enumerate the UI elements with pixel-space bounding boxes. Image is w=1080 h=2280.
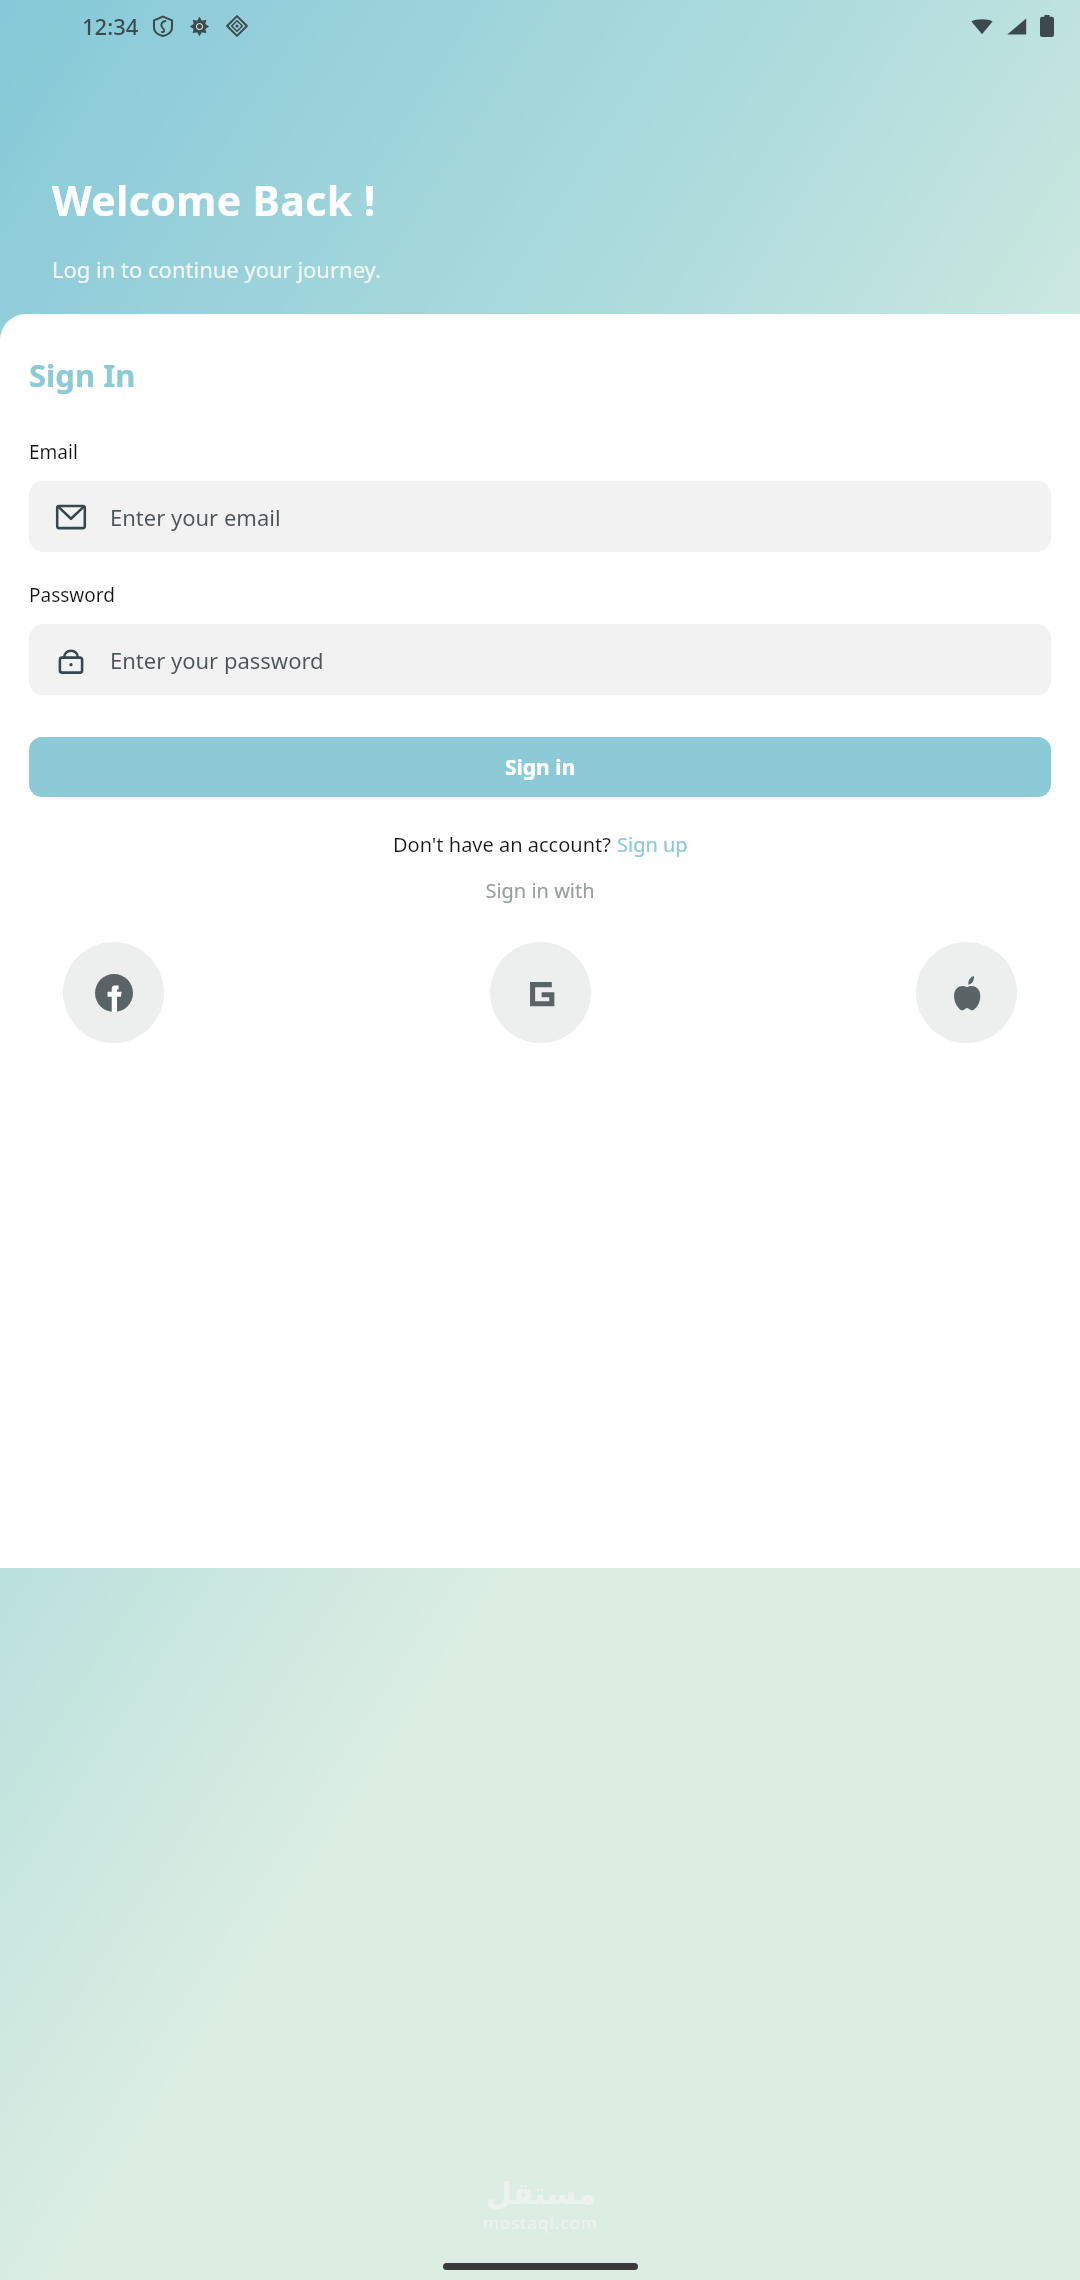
staticText: Welcome Back ! — [52, 172, 376, 228]
staticText: Sign up — [617, 831, 688, 858]
staticText: مستقل — [486, 2176, 596, 2211]
staticText: Sign in — [505, 753, 576, 782]
button[interactable]: Enter your password — [29, 624, 1051, 695]
button[interactable]: Sign up — [617, 831, 688, 858]
button[interactable]: Sign in with Facebook — [63, 942, 164, 1043]
staticText: Password — [29, 582, 115, 608]
staticText: Don't have an account? — [393, 831, 617, 858]
staticText: Email — [29, 439, 78, 465]
staticText: Enter your password — [110, 645, 324, 675]
staticText: Sign in with — [29, 877, 1051, 904]
staticText: Log in to continue your journey. — [52, 254, 381, 284]
button[interactable]: Enter your email — [29, 481, 1051, 552]
staticText: mostaql.com — [483, 2211, 598, 2234]
button[interactable]: Sign in — [29, 737, 1051, 797]
staticText: 12:34 — [82, 11, 139, 41]
staticText: Sign In — [29, 354, 136, 396]
staticText: Enter your email — [110, 502, 281, 532]
button[interactable]: Sign in with Google — [490, 942, 591, 1043]
button[interactable]: Sign in with Apple — [916, 942, 1017, 1043]
